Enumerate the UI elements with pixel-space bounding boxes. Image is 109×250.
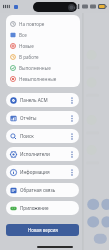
- staticText: Новая версия: [28, 227, 58, 233]
- staticText: Информация: [20, 169, 69, 175]
- staticText: Обратная связь: [20, 187, 75, 193]
- staticText: На повторе: [19, 21, 45, 27]
- button[interactable]: More options: [69, 130, 75, 142]
- button[interactable]: В работе: [6, 51, 80, 62]
- button[interactable]: Отчёты: [6, 111, 79, 125]
- button[interactable]: Невыполненные: [6, 73, 80, 84]
- button[interactable]: More options: [69, 112, 75, 124]
- button[interactable]: Новая версия: [6, 224, 79, 236]
- button[interactable]: Новые: [6, 40, 80, 51]
- staticText: Невыполненные: [19, 76, 57, 82]
- button[interactable]: Информация: [6, 165, 79, 179]
- button[interactable]: More options: [69, 94, 75, 106]
- button[interactable]: На повторе: [6, 18, 80, 29]
- button[interactable]: Приложение: [6, 201, 79, 215]
- staticText: Новые: [19, 43, 34, 49]
- staticText: Отчёты: [20, 115, 69, 121]
- staticText: Приложение: [20, 205, 75, 211]
- button[interactable]: More options: [69, 166, 75, 178]
- staticText: Выполненные: [19, 65, 51, 71]
- button[interactable]: Исполнители: [6, 147, 79, 161]
- button[interactable]: Все: [6, 29, 80, 40]
- staticText: Все: [19, 32, 27, 38]
- button[interactable]: Поиск: [6, 129, 79, 143]
- button[interactable]: Панель АСМ: [6, 93, 79, 107]
- staticText: В работе: [19, 54, 39, 60]
- staticText: Панель АСМ: [20, 97, 69, 103]
- button[interactable]: Выполненные: [6, 62, 80, 73]
- button[interactable]: Обратная связь: [6, 183, 79, 197]
- staticText: Поиск: [20, 133, 69, 139]
- staticText: Исполнители: [20, 151, 69, 157]
- button[interactable]: More options: [69, 148, 75, 160]
